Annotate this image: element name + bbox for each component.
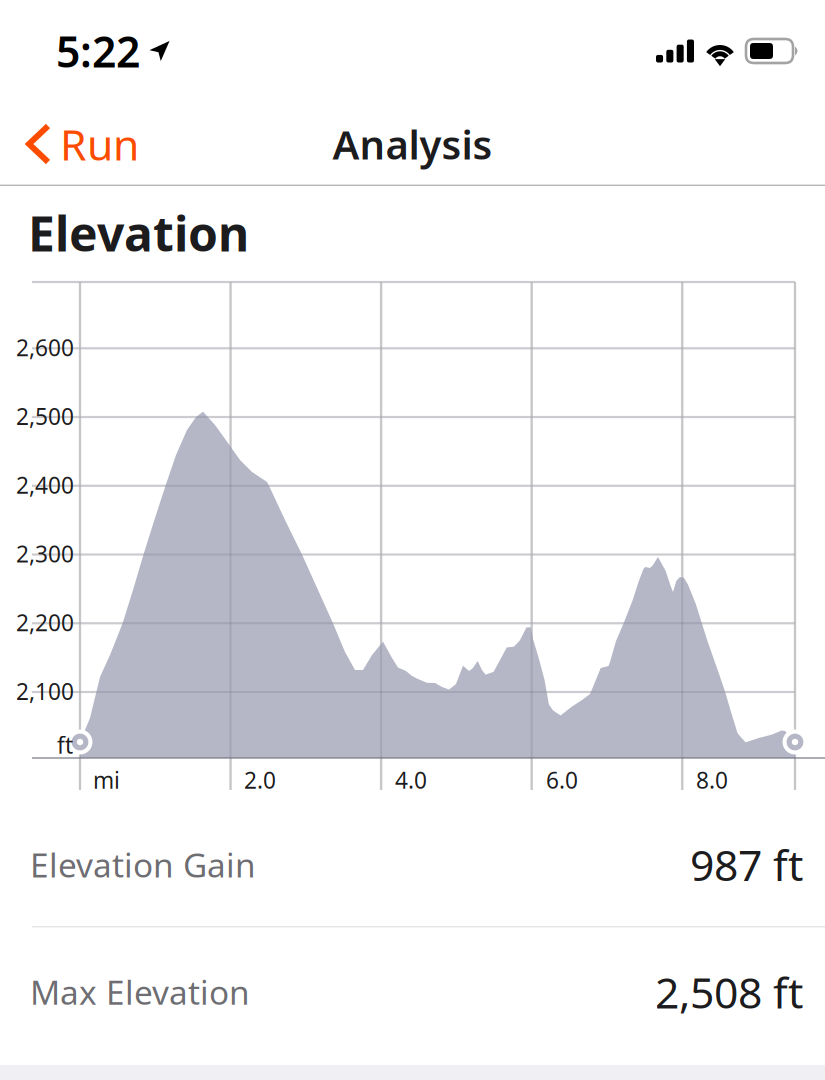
staticText: ft (57, 730, 73, 760)
staticText: 4.0 (395, 765, 427, 795)
staticText: 2,200 (16, 607, 74, 637)
staticText: Max Elevation (30, 970, 250, 1014)
staticText: Analysis (332, 117, 492, 170)
staticText: 2,508 ft (655, 964, 803, 1020)
button[interactable]: Run (0, 102, 153, 186)
staticText: Run (60, 116, 139, 172)
staticText: 2,500 (16, 401, 74, 431)
staticText: 2,600 (16, 332, 74, 362)
staticText: 2.0 (244, 765, 276, 795)
staticText: Elevation Gain (30, 842, 256, 887)
staticText: 2,400 (16, 470, 74, 500)
button[interactable]: Max Elevation (0, 927, 825, 1056)
staticText: 987 ft (690, 836, 803, 893)
staticText: 6.0 (546, 765, 578, 795)
staticText: mi (93, 765, 120, 795)
staticText: Elevation (28, 201, 249, 265)
staticText: 5:22 (56, 23, 140, 79)
staticText: 2,100 (16, 676, 74, 706)
button[interactable]: Elevation Gain (0, 803, 825, 926)
staticText: 2,300 (16, 539, 74, 569)
staticText: 8.0 (696, 765, 728, 795)
